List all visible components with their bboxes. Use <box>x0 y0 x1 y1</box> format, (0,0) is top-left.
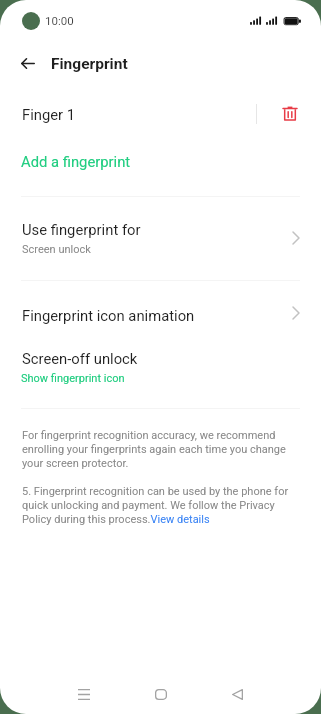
staticText: 5. Fingerprint recognition can be used b… <box>22 485 301 526</box>
button[interactable]: Use fingerprint for <box>0 205 321 273</box>
staticText: Add a fingerprint <box>21 153 131 170</box>
staticText: 10:00 <box>45 14 74 27</box>
button[interactable]: Back <box>11 46 45 80</box>
staticText: Screen-off unlock <box>22 350 138 367</box>
staticText: For fingerprint recognition accuracy, we… <box>22 429 301 470</box>
button[interactable]: Screen-off unlock <box>0 337 321 397</box>
button[interactable]: Fingerprint icon animation <box>0 289 321 337</box>
staticText: Finger 1 <box>22 106 76 123</box>
button[interactable]: Finger 1 <box>0 92 250 136</box>
button[interactable]: Recent apps <box>60 674 108 714</box>
staticText: Use fingerprint for <box>22 221 141 238</box>
staticText: Show fingerprint icon <box>21 372 125 385</box>
button[interactable]: 5. Fingerprint recognition can be used b… <box>22 485 301 526</box>
staticText: Screen unlock <box>22 243 91 256</box>
button[interactable]: Add a fingerprint <box>0 140 321 184</box>
staticText: Fingerprint icon animation <box>22 307 195 324</box>
staticText: Fingerprint <box>51 55 128 73</box>
button[interactable]: Delete fingerprint <box>266 92 312 136</box>
button[interactable]: Home <box>137 674 185 714</box>
button[interactable]: Back <box>213 674 261 714</box>
